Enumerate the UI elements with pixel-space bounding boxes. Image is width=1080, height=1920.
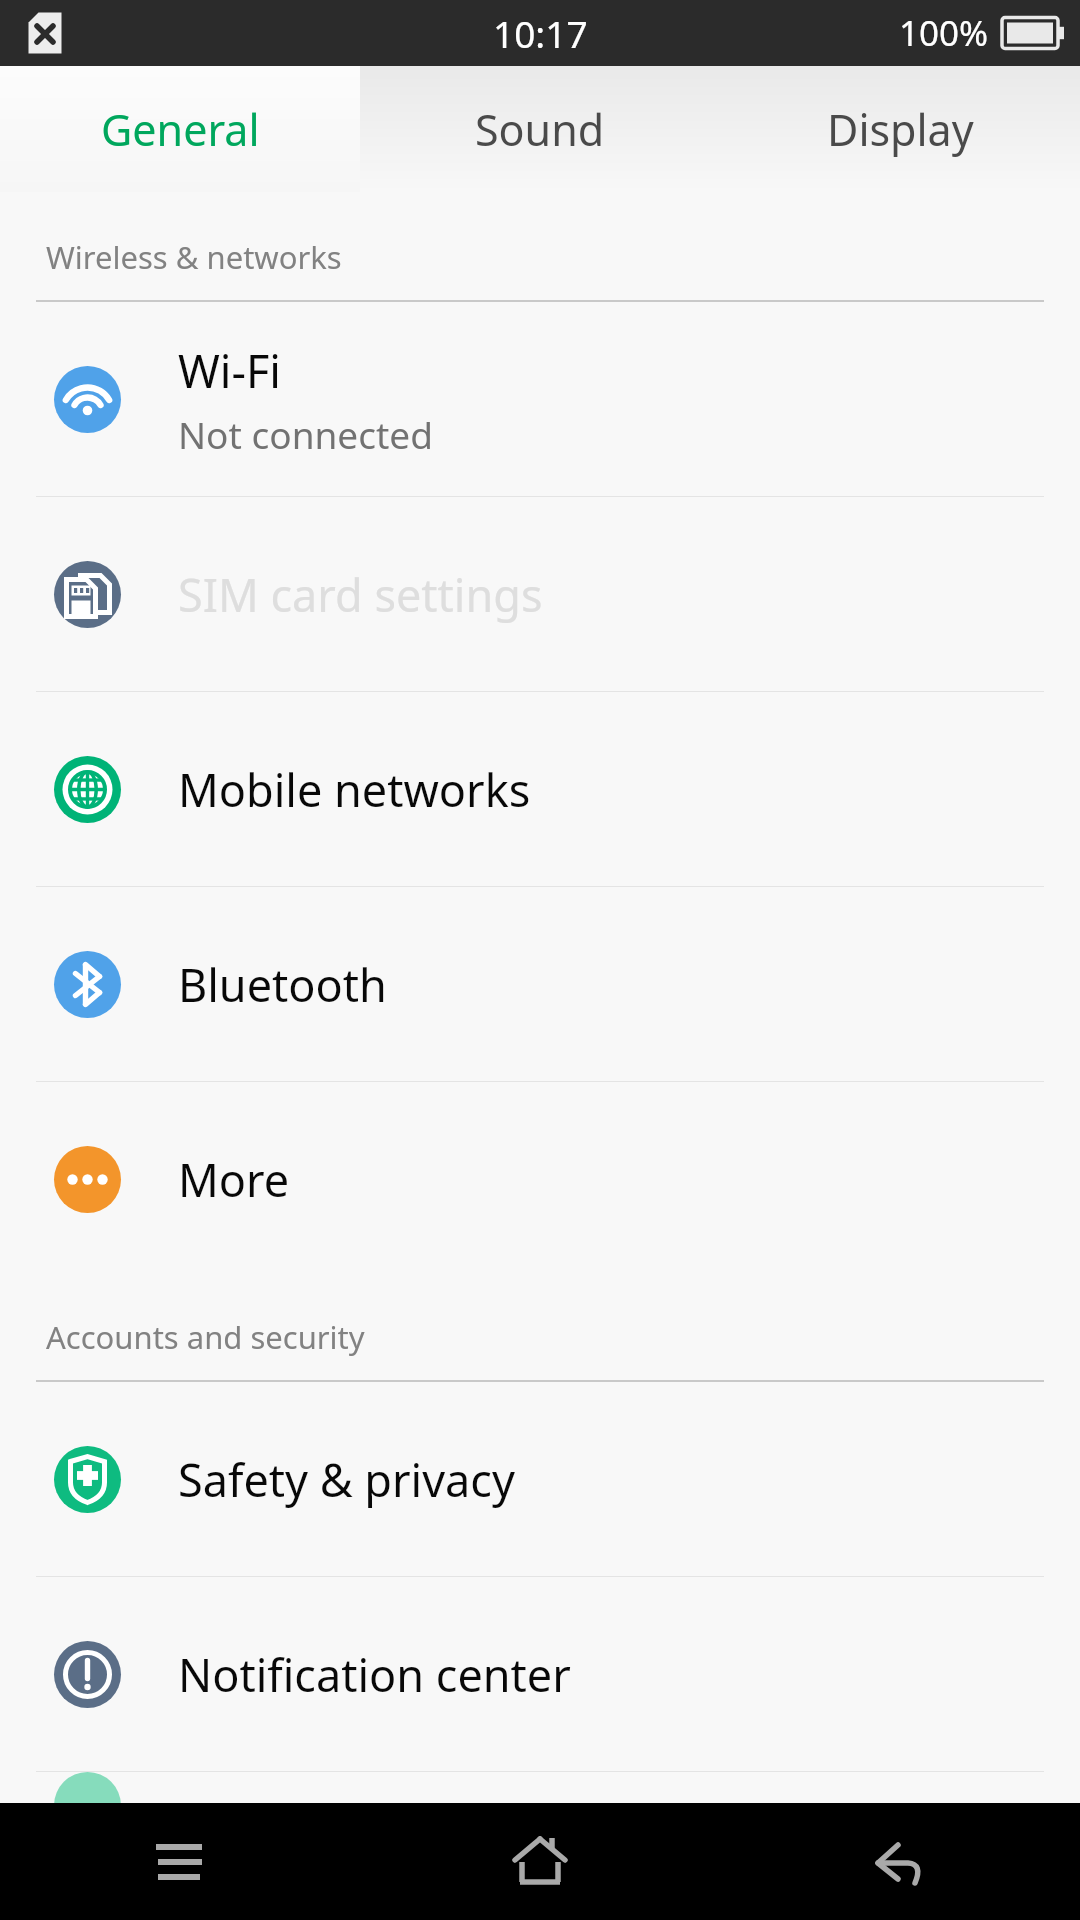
- staticText: Notification center: [178, 1644, 571, 1705]
- button[interactable]: Sound: [360, 66, 720, 192]
- staticText: Wireless & networks: [46, 236, 342, 278]
- staticText: 100%: [899, 9, 989, 57]
- button[interactable]: More: [0, 1082, 1080, 1276]
- button[interactable]: Safety & privacy: [0, 1382, 1080, 1576]
- button[interactable]: Back: [720, 1803, 1080, 1920]
- staticText: Bluetooth: [178, 954, 387, 1015]
- button[interactable]: SIM card settings: [0, 497, 1080, 691]
- staticText: General: [101, 100, 260, 159]
- staticText: Mobile networks: [178, 759, 531, 820]
- staticText: Accounts and security: [46, 1316, 365, 1358]
- staticText: 10:17: [493, 8, 588, 58]
- staticText: Display: [827, 100, 974, 159]
- button[interactable]: [0, 1772, 1080, 1803]
- button[interactable]: Notification center: [0, 1577, 1080, 1771]
- button[interactable]: Menu: [0, 1803, 360, 1920]
- button[interactable]: Mobile networks: [0, 692, 1080, 886]
- staticText: Sound: [475, 100, 605, 159]
- button[interactable]: General: [0, 66, 360, 192]
- button[interactable]: Display: [720, 66, 1080, 192]
- button[interactable]: Home: [360, 1803, 720, 1920]
- button[interactable]: Bluetooth: [0, 887, 1080, 1081]
- staticText: SIM card settings: [178, 564, 543, 625]
- staticText: Wi-Fi: [178, 340, 281, 401]
- button[interactable]: Wi-Fi: [0, 302, 1080, 496]
- staticText: Safety & privacy: [178, 1449, 515, 1510]
- staticText: More: [178, 1149, 290, 1210]
- staticText: Not connected: [178, 409, 433, 459]
